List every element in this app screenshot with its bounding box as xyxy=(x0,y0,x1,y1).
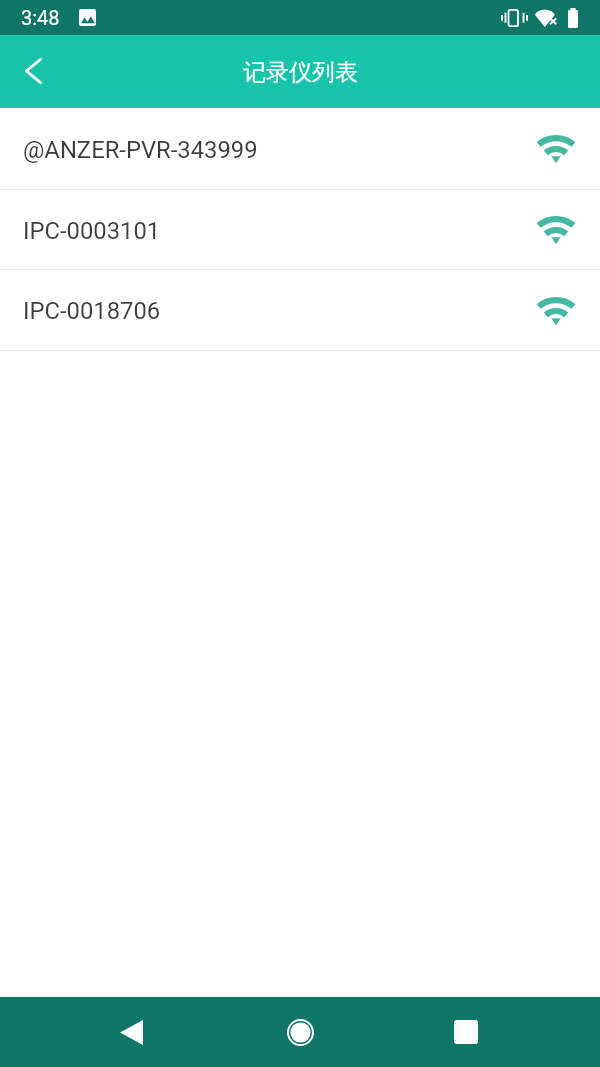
button[interactable]: Recents xyxy=(438,1004,494,1060)
button[interactable]: Back xyxy=(103,1004,159,1060)
button[interactable]: Back xyxy=(3,42,63,102)
staticText: 3:48 xyxy=(21,6,60,29)
button[interactable]: Home xyxy=(272,1004,328,1060)
staticText: 记录仪列表 xyxy=(243,58,358,87)
button[interactable]: IPC-0018706 xyxy=(0,270,600,350)
staticText: @ANZER-PVR-343999 xyxy=(23,136,258,164)
button[interactable]: IPC-0003101 xyxy=(0,190,600,269)
staticText: IPC-0018706 xyxy=(23,297,161,325)
staticText: IPC-0003101 xyxy=(23,217,161,245)
button[interactable]: @ANZER-PVR-343999 xyxy=(0,108,600,189)
